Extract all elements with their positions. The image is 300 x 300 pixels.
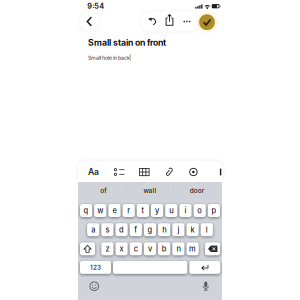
button[interactable]: x — [0, 0, 300, 300]
staticText: d — [119, 225, 124, 234]
staticText: g — [147, 225, 152, 234]
button[interactable]: Back — [0, 0, 300, 300]
staticText: j — [177, 225, 179, 234]
button[interactable]: Delete — [0, 0, 300, 300]
button[interactable]: Record — [0, 0, 300, 300]
staticText: s — [105, 225, 109, 234]
button[interactable]: e — [0, 0, 300, 300]
button[interactable]: r — [0, 0, 300, 300]
button[interactable]: d — [0, 0, 300, 300]
staticText: x — [120, 244, 124, 253]
button[interactable]: g — [0, 0, 300, 300]
button[interactable]: l — [0, 0, 300, 300]
button[interactable]: Table — [0, 0, 300, 300]
staticText: of — [100, 187, 106, 194]
button[interactable]: of — [0, 0, 300, 300]
staticText: wall — [143, 187, 156, 194]
button[interactable]: Undo — [0, 0, 300, 300]
button[interactable]: n — [0, 0, 300, 300]
staticText: e — [112, 206, 116, 215]
staticText: w — [97, 206, 103, 215]
button[interactable]: t — [0, 0, 300, 300]
button[interactable]: Checklist — [0, 0, 300, 300]
staticText: t — [141, 206, 144, 215]
button[interactable]: b — [0, 0, 300, 300]
staticText: 9:54 — [87, 2, 104, 10]
staticText: 123 — [90, 263, 101, 271]
staticText: z — [105, 244, 109, 253]
staticText: r — [127, 206, 130, 215]
button[interactable]: Shift — [0, 0, 300, 300]
button[interactable]: c — [0, 0, 300, 300]
staticText: o — [197, 206, 202, 215]
button[interactable]: w — [0, 0, 300, 300]
button[interactable]: k — [0, 0, 300, 300]
button[interactable]: p — [0, 0, 300, 300]
staticText: i — [184, 206, 186, 215]
staticText: q — [84, 206, 89, 215]
button[interactable]: Format — [0, 0, 300, 300]
staticText: Aa — [88, 167, 99, 177]
staticText: f — [134, 225, 137, 234]
button[interactable]: Dictate — [0, 0, 300, 300]
button[interactable]: door — [0, 0, 300, 300]
staticText: l — [206, 225, 208, 234]
staticText: h — [162, 225, 166, 234]
button[interactable]: More — [0, 0, 300, 300]
button[interactable]: h — [0, 0, 300, 300]
staticText: n — [176, 244, 180, 253]
button[interactable]: q — [0, 0, 300, 300]
button[interactable]: s — [0, 0, 300, 300]
button[interactable]: o — [0, 0, 300, 300]
button[interactable]: Done — [0, 0, 300, 300]
button[interactable]: v — [0, 0, 300, 300]
staticText: m — [189, 244, 196, 253]
staticText: b — [162, 244, 167, 253]
staticText: v — [148, 244, 152, 253]
button[interactable]: Emoji — [0, 0, 300, 300]
button[interactable]: u — [0, 0, 300, 300]
staticText: door — [190, 187, 204, 194]
staticText: Small stain on front — [88, 37, 166, 48]
staticText: p — [211, 206, 216, 215]
button[interactable]: Space — [0, 0, 300, 300]
button[interactable]: z — [0, 0, 300, 300]
button[interactable]: a — [0, 0, 300, 300]
button[interactable]: i — [0, 0, 300, 300]
staticText: y — [155, 206, 159, 215]
button[interactable]: Attach — [0, 0, 300, 300]
button[interactable]: Return — [0, 0, 300, 300]
button[interactable]: 123 — [0, 0, 300, 300]
button[interactable]: f — [0, 0, 300, 300]
staticText: k — [191, 225, 195, 234]
staticText: c — [134, 244, 138, 253]
staticText: a — [91, 225, 95, 234]
button[interactable]: m — [0, 0, 300, 300]
staticText: u — [169, 206, 173, 215]
button[interactable]: wall — [0, 0, 300, 300]
button[interactable]: Share — [0, 0, 300, 300]
button[interactable]: j — [0, 0, 300, 300]
staticText: Small hole in back — [88, 55, 130, 61]
button[interactable]: y — [0, 0, 300, 300]
